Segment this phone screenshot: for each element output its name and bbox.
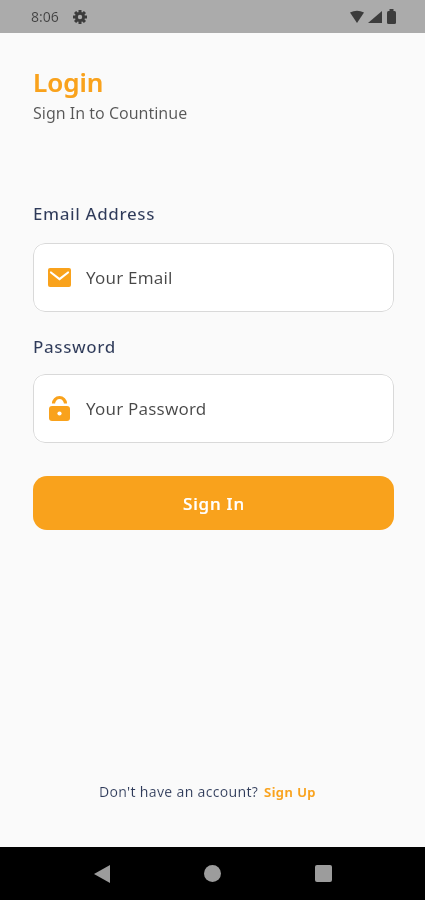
button[interactable] xyxy=(78,847,126,900)
staticText: Sign In to Countinue xyxy=(33,102,188,124)
button[interactable] xyxy=(299,847,347,900)
staticText: Login xyxy=(33,64,104,99)
staticText: Don't have an account? xyxy=(99,782,259,801)
staticText: 8:06 xyxy=(31,7,59,26)
button[interactable] xyxy=(188,847,236,900)
button[interactable]: Your Email xyxy=(33,243,394,312)
button[interactable]: Your Password xyxy=(33,374,394,443)
button[interactable]: Sign In xyxy=(33,476,394,530)
staticText: Sign In xyxy=(183,492,245,515)
staticText: Email Address xyxy=(33,202,156,225)
staticText: Your Email xyxy=(86,266,173,289)
staticText: Password xyxy=(33,335,116,358)
button[interactable]: Sign Up xyxy=(264,783,316,801)
staticText: Your Password xyxy=(86,397,207,420)
staticText: Sign Up xyxy=(264,783,316,801)
